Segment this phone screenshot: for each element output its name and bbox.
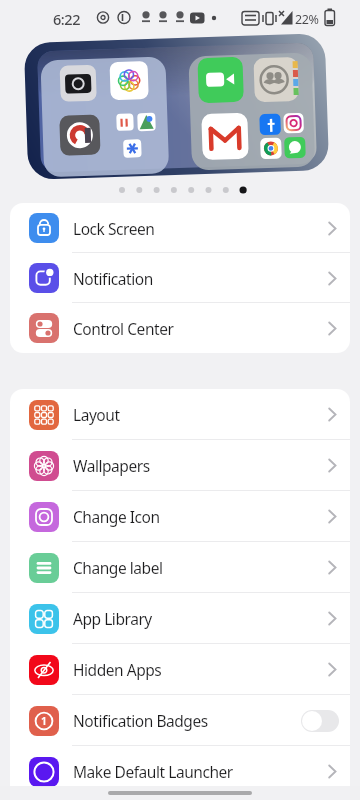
staticText: Notification Badges bbox=[73, 710, 208, 731]
button[interactable]: Control Center bbox=[10, 303, 350, 353]
button[interactable]: Layout bbox=[10, 389, 350, 440]
button[interactable]: Change label bbox=[10, 542, 350, 593]
button[interactable]: Make Default Launcher bbox=[10, 746, 350, 797]
staticText: Make Default Launcher bbox=[73, 761, 233, 782]
staticText: Change Icon bbox=[73, 506, 160, 527]
staticText: Notification bbox=[73, 268, 153, 289]
staticText: Lock Screen bbox=[73, 218, 155, 239]
staticText: Change label bbox=[73, 557, 163, 578]
staticText: 22% bbox=[295, 11, 319, 28]
staticText: Wallpapers bbox=[73, 455, 150, 476]
button[interactable]: Notification bbox=[10, 253, 350, 303]
staticText: 1 bbox=[41, 714, 47, 728]
staticText: 6:22 bbox=[53, 9, 81, 29]
staticText: Layout bbox=[73, 404, 120, 425]
button[interactable] bbox=[24, 33, 329, 180]
staticText: App Library bbox=[73, 608, 152, 629]
button[interactable]: Wallpapers bbox=[10, 440, 350, 491]
staticText: Control Center bbox=[73, 318, 174, 339]
staticText: Hidden Apps bbox=[73, 659, 162, 680]
button[interactable]: App Library bbox=[10, 593, 350, 644]
button[interactable]: Change Icon bbox=[10, 491, 350, 542]
button[interactable]: 1 bbox=[10, 695, 350, 746]
button[interactable]: Hidden Apps bbox=[10, 644, 350, 695]
button[interactable]: Lock Screen bbox=[10, 203, 350, 253]
